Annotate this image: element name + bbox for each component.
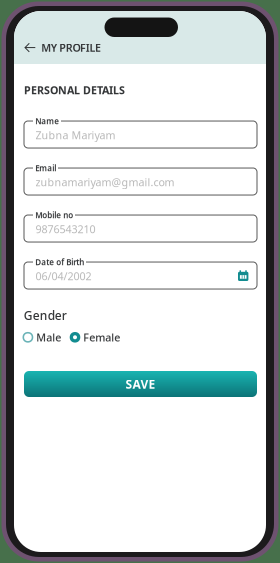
button[interactable]: Female <box>70 330 120 344</box>
button[interactable]: Male <box>23 330 61 344</box>
staticText: PERSONAL DETAILS <box>24 83 125 97</box>
staticText: Mobile no <box>35 210 73 220</box>
staticText: 06/04/2002 <box>35 269 91 283</box>
staticText: Name <box>35 116 59 126</box>
staticText: zubnamariyam@gmail.com <box>35 175 174 189</box>
button[interactable]: SAVE <box>24 371 257 397</box>
staticText: Date of Birth <box>35 257 84 267</box>
staticText: MY PROFILE <box>41 40 101 55</box>
staticText: Female <box>83 330 120 344</box>
staticText: Gender <box>24 307 67 323</box>
staticText: Zubna Mariyam <box>35 128 115 142</box>
staticText: Male <box>36 330 61 344</box>
staticText: 9876543210 <box>35 222 95 236</box>
button[interactable]: MY PROFILE <box>22 38 98 57</box>
staticText: SAVE <box>125 376 155 392</box>
staticText: Email <box>35 163 56 173</box>
